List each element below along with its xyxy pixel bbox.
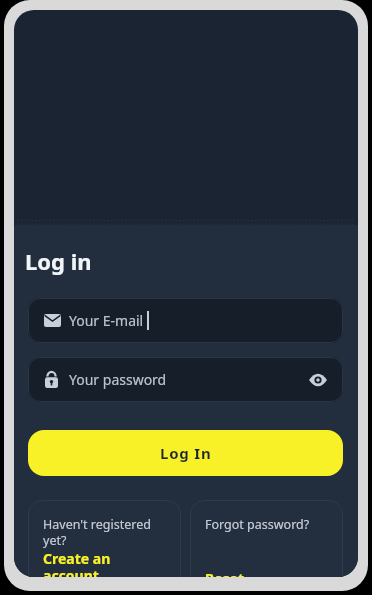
staticText: Your password	[69, 370, 167, 389]
staticText: Your E-mail	[69, 311, 144, 330]
staticText: Reset password	[205, 569, 272, 577]
staticText: Forgot password?	[205, 516, 310, 533]
button[interactable]: Your password	[28, 357, 343, 402]
staticText: Log in	[25, 246, 92, 276]
button[interactable]: Haven't registered yet?	[28, 500, 181, 577]
button[interactable]: Your E-mail	[28, 298, 343, 343]
staticText: Create an account	[43, 549, 111, 577]
staticText: Haven't registered yet?	[43, 516, 151, 549]
button[interactable]: Log In	[28, 430, 343, 476]
staticText: Log In	[160, 443, 212, 463]
button[interactable]: Forgot password?	[190, 500, 343, 577]
